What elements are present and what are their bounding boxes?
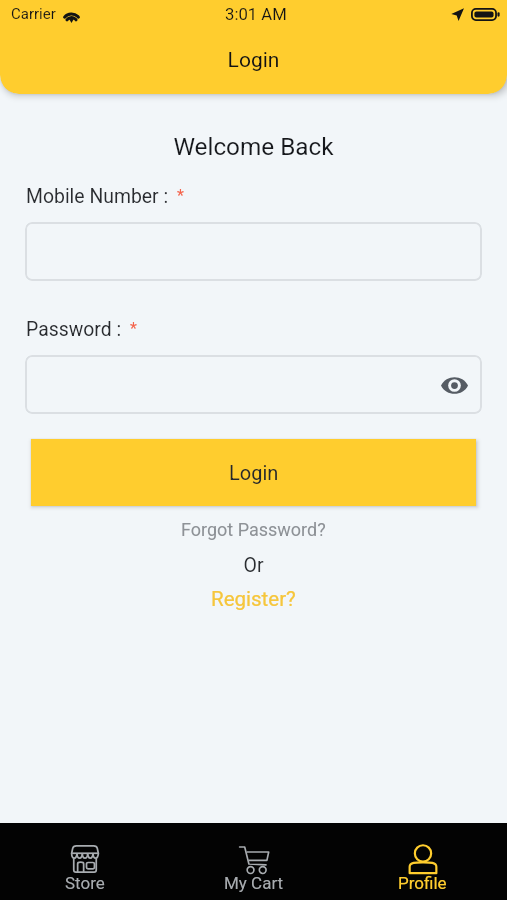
- button[interactable]: [25, 222, 482, 281]
- staticText: Login: [0, 48, 507, 73]
- staticText: Or: [0, 554, 507, 577]
- staticText: Profile: [398, 873, 447, 893]
- button[interactable]: My Cart: [169, 823, 338, 900]
- staticText: *: [130, 319, 137, 338]
- button[interactable]: Profile: [338, 823, 507, 900]
- staticText: Welcome Back: [0, 132, 507, 160]
- button[interactable]: Store: [0, 823, 169, 900]
- button[interactable]: Login: [31, 439, 476, 506]
- staticText: 3:01 AM: [225, 5, 287, 25]
- staticText: Mobile Number :: [26, 185, 169, 208]
- button[interactable]: Register?: [0, 587, 507, 611]
- staticText: Register?: [211, 587, 296, 611]
- staticText: Password :: [26, 318, 122, 341]
- staticText: Login: [229, 461, 279, 484]
- button[interactable]: Forgot Password?: [0, 519, 507, 540]
- staticText: *: [177, 186, 184, 205]
- staticText: Store: [65, 873, 105, 893]
- staticText: My Cart: [224, 873, 284, 893]
- button[interactable]: Show password: [437, 368, 471, 402]
- staticText: Carrier: [11, 5, 56, 23]
- staticText: Forgot Password?: [181, 519, 326, 540]
- button[interactable]: Show password: [25, 355, 482, 414]
